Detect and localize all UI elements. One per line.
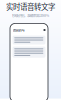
staticText: 秒级识别，准确率高达98% bbox=[12, 13, 49, 18]
staticText: 语音转写 bbox=[12, 27, 24, 32]
staticText: 实时语音转文字 bbox=[6, 1, 55, 12]
